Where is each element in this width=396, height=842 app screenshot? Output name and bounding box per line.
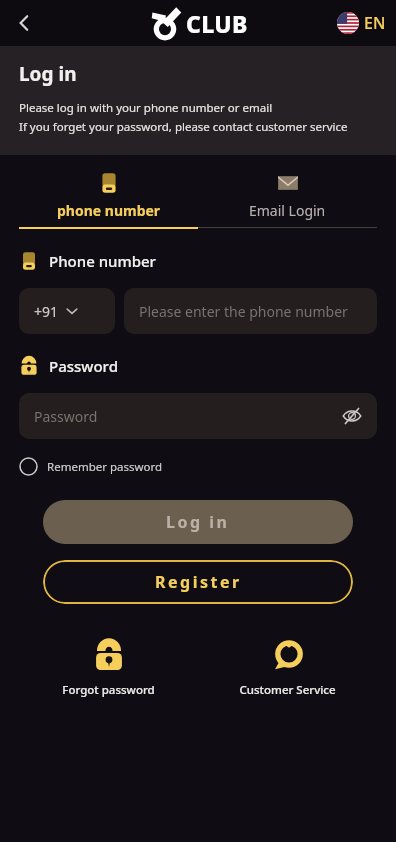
staticText: Log in bbox=[166, 511, 230, 533]
staticText: CLUB bbox=[186, 8, 248, 39]
staticText: Please log in with your phone number or … bbox=[19, 100, 273, 116]
staticText: Remember password bbox=[47, 459, 163, 475]
staticText: Email Login bbox=[249, 201, 326, 220]
staticText: Customer Service bbox=[239, 682, 336, 698]
button[interactable]: Log in bbox=[43, 500, 353, 544]
button[interactable]: Back bbox=[4, 3, 44, 43]
button[interactable]: Remember password bbox=[19, 457, 163, 476]
staticText: Password bbox=[34, 407, 339, 426]
staticText: phone number bbox=[57, 201, 161, 220]
button[interactable]: Please enter the phone number bbox=[124, 288, 377, 334]
staticText: Log in bbox=[19, 61, 77, 87]
staticText: Forgot password bbox=[62, 682, 155, 698]
staticText: Password bbox=[49, 356, 118, 376]
staticText: EN bbox=[364, 12, 386, 34]
button[interactable]: Register bbox=[43, 560, 353, 604]
button[interactable]: Email Login bbox=[198, 165, 377, 227]
staticText: +91 bbox=[34, 302, 59, 321]
button[interactable]: Password bbox=[19, 393, 377, 439]
staticText: Register bbox=[155, 571, 242, 593]
button[interactable]: phone number bbox=[19, 165, 198, 227]
button[interactable]: +91 bbox=[19, 288, 115, 334]
button[interactable]: Show password bbox=[339, 403, 365, 429]
button[interactable]: EN bbox=[337, 12, 386, 34]
staticText: If you forget your password, please cont… bbox=[19, 119, 348, 135]
staticText: Please enter the phone number bbox=[139, 302, 348, 321]
button[interactable]: Customer Service bbox=[198, 634, 377, 702]
button[interactable]: Forgot password bbox=[19, 634, 198, 702]
staticText: Phone number bbox=[49, 251, 156, 271]
